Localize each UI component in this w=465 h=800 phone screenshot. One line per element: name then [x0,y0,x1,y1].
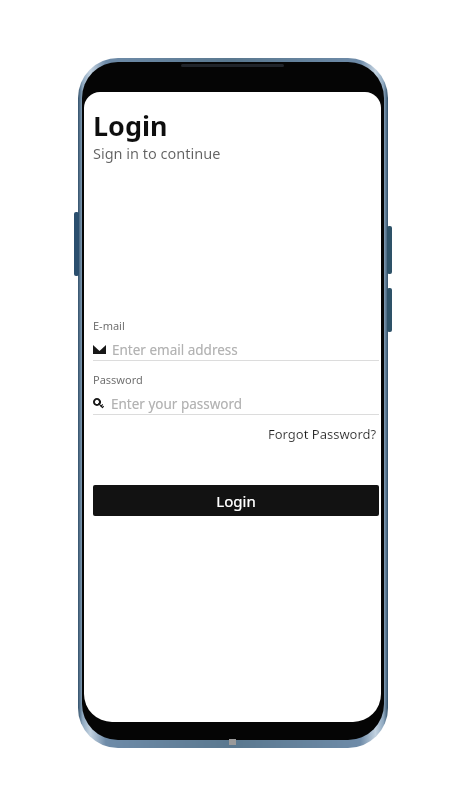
other: Volume button [74,212,79,276]
button[interactable]: Login [93,485,379,516]
staticText: Password [93,372,143,387]
staticText: Login [216,491,256,511]
button[interactable]: Enter email address [93,339,379,360]
staticText: Enter your password [111,395,243,413]
button[interactable]: Forgot Password? [266,422,379,446]
staticText: E-mail [93,318,125,333]
staticText: Sign in to continue [93,143,221,163]
button[interactable]: Enter your password [93,393,379,414]
other: Power button [387,226,392,274]
staticText: Enter email address [112,341,238,359]
staticText: Login [93,107,168,144]
